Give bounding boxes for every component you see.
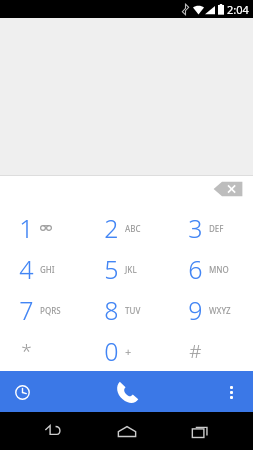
button[interactable]: Recent apps — [183, 414, 217, 448]
button[interactable]: 3 — [169, 208, 253, 248]
staticText: MNO — [209, 264, 229, 275]
button[interactable]: Home — [110, 414, 144, 448]
button[interactable]: 1 — [0, 208, 85, 248]
button[interactable]: 0 — [85, 330, 169, 371]
staticText: TUV — [125, 305, 141, 316]
button[interactable]: 4 — [0, 248, 85, 289]
button[interactable]: # — [169, 330, 253, 371]
button[interactable]: 2 — [85, 208, 169, 248]
staticText: 0 — [104, 334, 119, 368]
button[interactable]: Delete — [213, 180, 243, 198]
staticText: DEF — [209, 223, 224, 234]
button[interactable]: 5 — [85, 248, 169, 289]
staticText: 1 — [19, 211, 34, 245]
staticText: 7 — [19, 293, 34, 327]
staticText: 5 — [104, 252, 119, 286]
staticText: 8 — [104, 293, 119, 327]
staticText: ABC — [125, 223, 141, 234]
staticText: 4 — [19, 252, 34, 286]
button[interactable]: Call history — [8, 378, 36, 406]
button[interactable]: 8 — [85, 289, 169, 330]
staticText: 2 — [104, 211, 119, 245]
button[interactable]: 6 — [169, 248, 253, 289]
staticText: PQRS — [40, 305, 61, 316]
staticText: 6 — [188, 252, 203, 286]
staticText: 3 — [188, 211, 203, 245]
button[interactable]: Call — [99, 371, 155, 412]
staticText: # — [189, 338, 202, 364]
staticText: JKL — [125, 264, 137, 275]
button[interactable]: 7 — [0, 289, 85, 330]
button[interactable]: * — [0, 330, 85, 371]
staticText: * — [21, 338, 32, 364]
staticText: 2:04 — [227, 2, 249, 17]
button[interactable]: 9 — [169, 289, 253, 330]
staticText: 9 — [188, 293, 203, 327]
button[interactable]: More options — [217, 378, 245, 406]
staticText: GHI — [40, 264, 55, 275]
staticText: + — [125, 344, 132, 359]
button[interactable]: Back — [36, 414, 70, 448]
staticText: WXYZ — [209, 305, 231, 316]
